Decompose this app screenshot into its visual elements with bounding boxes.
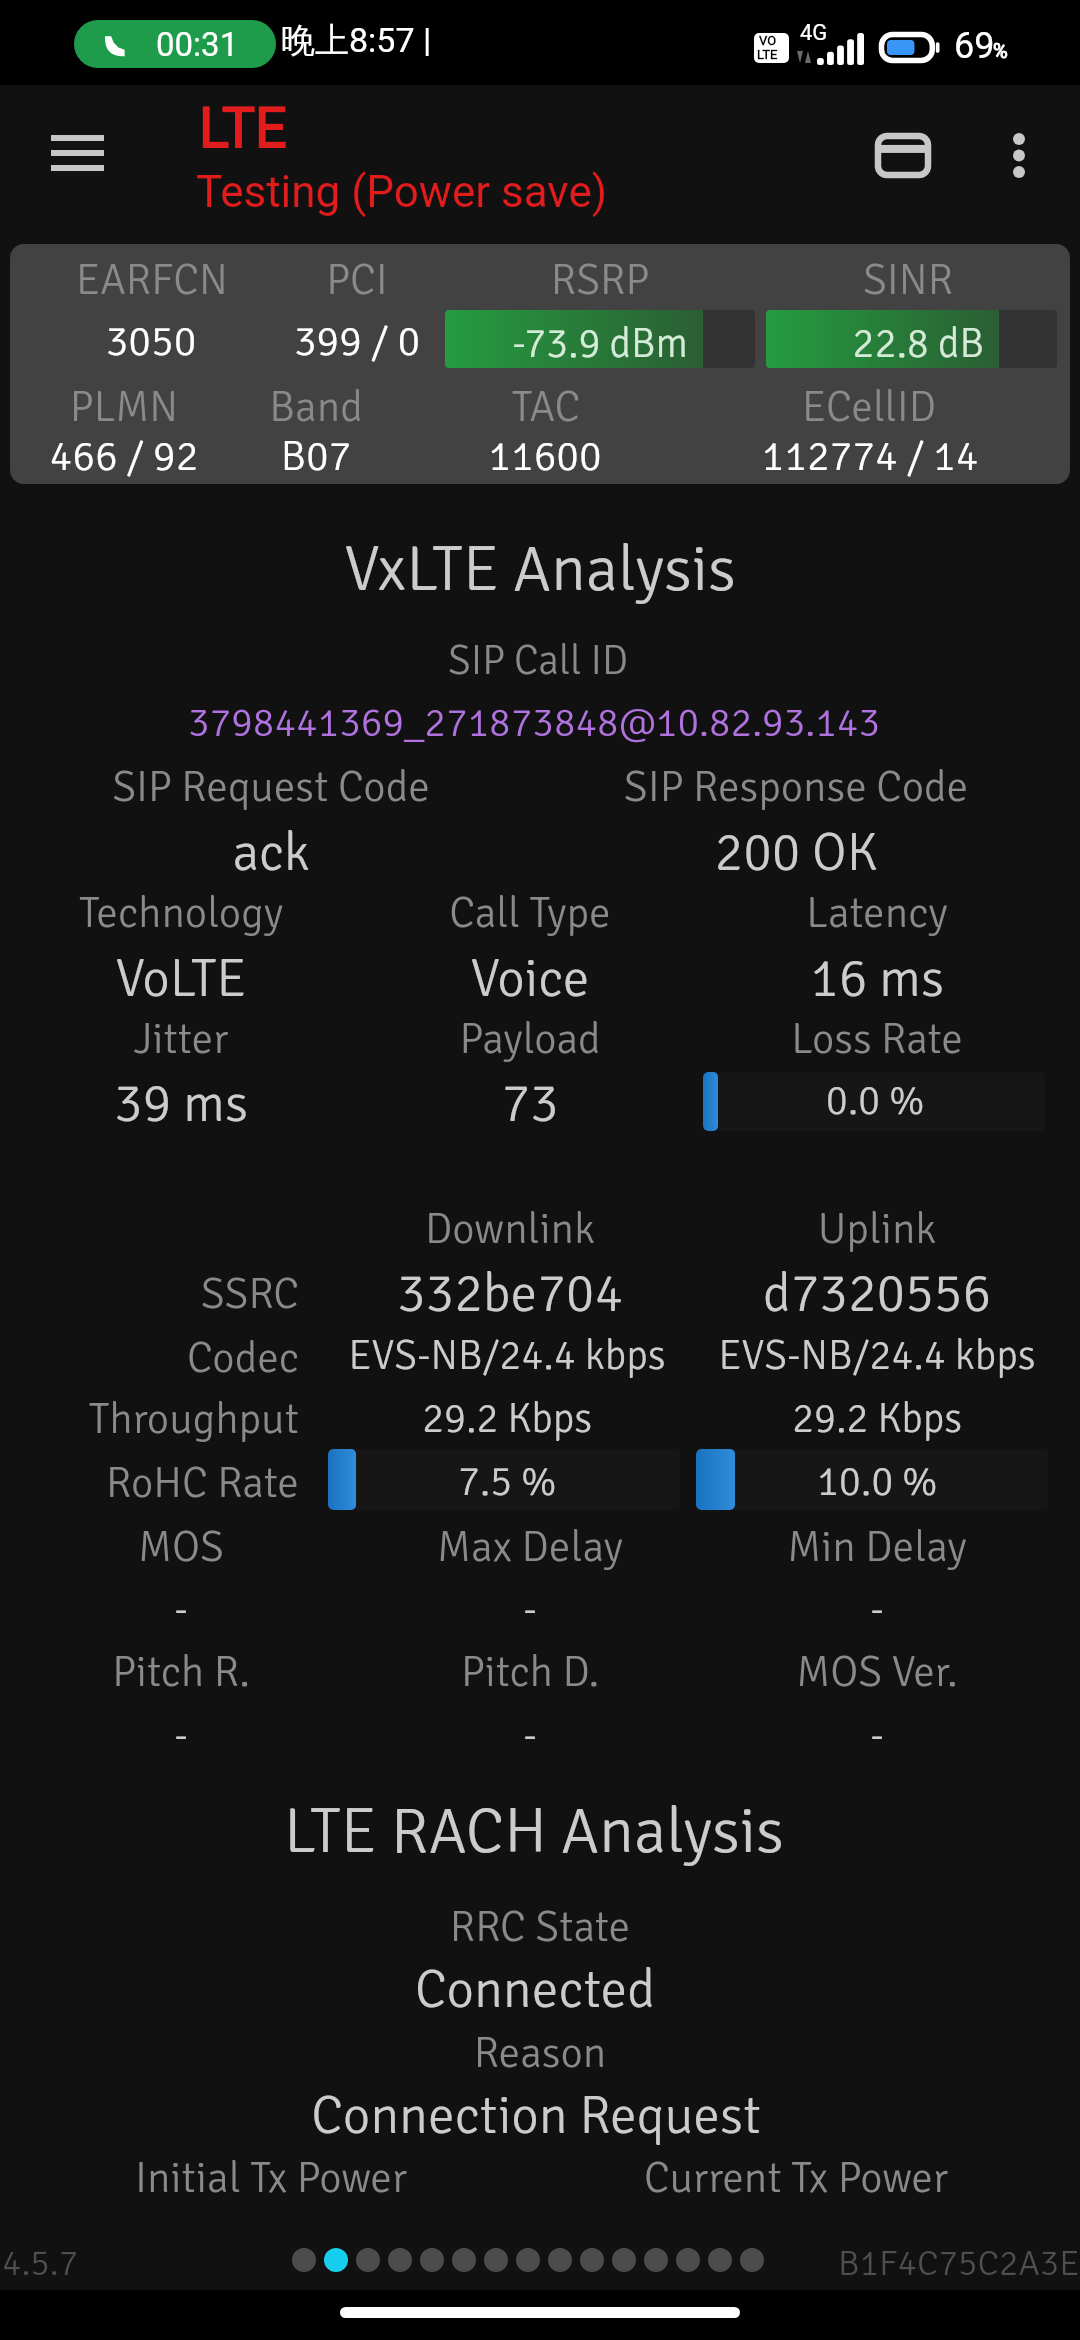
button[interactable]: Page 6 bbox=[452, 2248, 476, 2272]
staticText: B07 bbox=[0, 431, 856, 483]
staticText: 200 OK bbox=[256, 820, 1080, 885]
staticText: VxLTE Analysis bbox=[0, 530, 1080, 609]
staticText: Testing (Power save) bbox=[196, 166, 608, 218]
button[interactable]: Serving cell info bbox=[10, 244, 1070, 484]
staticText: Connected bbox=[0, 1957, 1075, 2022]
staticText: - bbox=[256, 2218, 1080, 2269]
staticText: d7320556 bbox=[337, 1261, 1080, 1326]
staticText: - bbox=[0, 2218, 811, 2269]
staticText: Latency bbox=[337, 887, 1080, 940]
staticText: ack bbox=[0, 820, 811, 885]
button[interactable]: Page 10 bbox=[580, 2248, 604, 2272]
staticText: 7.5 % bbox=[331, 1456, 683, 1507]
button[interactable]: Page 1 bbox=[292, 2248, 316, 2272]
button[interactable]: More options bbox=[973, 109, 1065, 201]
button[interactable]: SIM card info bbox=[857, 109, 949, 201]
staticText: Pitch D. bbox=[0, 1646, 1070, 1699]
staticText: Loss Rate bbox=[337, 1013, 1080, 1066]
staticText: Reason bbox=[0, 2027, 1080, 2080]
staticText: ECellID bbox=[329, 381, 1080, 434]
staticText: Voice bbox=[0, 946, 1070, 1011]
button[interactable]: Page 7 bbox=[484, 2248, 508, 2272]
staticText: Payload bbox=[0, 1013, 1070, 1066]
staticText: 3798441369_271873848@10.82.93.143 bbox=[0, 698, 1074, 747]
staticText: Initial Tx Power bbox=[0, 2152, 811, 2205]
staticText: B1F4C75C2A3E bbox=[838, 2241, 1080, 2285]
button[interactable]: Page 14 bbox=[708, 2248, 732, 2272]
staticText: SIP Response Code bbox=[256, 761, 1080, 814]
staticText: EVS-NB/24.4 kbps bbox=[337, 1330, 1080, 1381]
staticText: RoHC Rate bbox=[0, 1457, 299, 1510]
staticText: 10.0 % bbox=[701, 1456, 1053, 1507]
button[interactable]: Page 9 bbox=[548, 2248, 572, 2272]
staticText: EVS-NB/24.4 kbps bbox=[0, 1330, 1047, 1381]
staticText: 11600 bbox=[5, 431, 1080, 483]
staticText: 3050 bbox=[0, 316, 691, 368]
staticText: 73 bbox=[0, 1071, 1070, 1136]
button[interactable]: Page 8 bbox=[516, 2248, 540, 2272]
button[interactable]: Page 2 bbox=[324, 2248, 348, 2272]
staticText: 29.2 Kbps bbox=[0, 1393, 1047, 1444]
button[interactable]: Open navigation menu bbox=[25, 100, 129, 204]
staticText: 39 ms bbox=[0, 1071, 721, 1136]
staticText: 69 bbox=[954, 25, 995, 67]
staticText: 22.8 dB bbox=[693, 318, 984, 369]
staticText: Codec bbox=[0, 1332, 299, 1385]
staticText: MOS Ver. bbox=[337, 1646, 1080, 1699]
staticText: 399 / 0 bbox=[0, 316, 897, 368]
staticText: 00:31 bbox=[156, 25, 239, 64]
staticText: - bbox=[0, 1584, 721, 1635]
staticText: Min Delay bbox=[337, 1521, 1080, 1574]
button[interactable]: Page 12 bbox=[644, 2248, 668, 2272]
staticText: 466 / 92 bbox=[0, 431, 664, 483]
staticText: - bbox=[337, 1584, 1080, 1635]
staticText: 4G bbox=[800, 20, 828, 46]
staticText: 0.0 % bbox=[704, 1075, 1046, 1126]
staticText: - bbox=[0, 1584, 1070, 1635]
staticText: 29.2 Kbps bbox=[337, 1393, 1080, 1444]
staticText: 112774 / 14 bbox=[330, 431, 1080, 483]
button[interactable]: Page 11 bbox=[612, 2248, 636, 2272]
staticText: - bbox=[0, 1710, 721, 1761]
staticText: SINR bbox=[368, 254, 1080, 307]
staticText: 晚上8:57 | bbox=[281, 19, 432, 62]
staticText: Connection Request bbox=[0, 2083, 1076, 2148]
staticText: Pitch R. bbox=[0, 1646, 721, 1699]
staticText: EARFCN bbox=[0, 254, 692, 307]
button[interactable]: Page 3 bbox=[356, 2248, 380, 2272]
staticText: Uplink bbox=[337, 1203, 1080, 1256]
staticText: SSRC bbox=[0, 1268, 299, 1321]
staticText: Throughput bbox=[0, 1393, 299, 1446]
staticText: - bbox=[337, 1710, 1080, 1761]
staticText: PLMN bbox=[0, 381, 664, 434]
staticText: PCI bbox=[0, 254, 897, 307]
staticText: LTE bbox=[757, 47, 778, 62]
button[interactable]: Page 13 bbox=[676, 2248, 700, 2272]
staticText: Call Type bbox=[0, 887, 1070, 940]
button[interactable]: Page 15 bbox=[740, 2248, 764, 2272]
button[interactable]: Page 4 bbox=[388, 2248, 412, 2272]
staticText: Current Tx Power bbox=[256, 2152, 1080, 2205]
staticText: LTE RACH Analysis bbox=[0, 1792, 1074, 1871]
staticText: RRC State bbox=[0, 1901, 1080, 1954]
staticText: MOS bbox=[0, 1521, 721, 1574]
button[interactable]: Ongoing call 00:31 bbox=[74, 20, 276, 68]
staticText: LTE bbox=[199, 95, 287, 161]
staticText: 4.5.7 bbox=[2, 2241, 79, 2285]
staticText: TAC bbox=[6, 381, 1080, 434]
staticText: SIP Request Code bbox=[0, 761, 811, 814]
staticText: Band bbox=[0, 381, 856, 434]
staticText: SIP Call ID bbox=[0, 635, 1078, 686]
staticText: VO bbox=[759, 33, 777, 48]
staticText: - bbox=[0, 1710, 1070, 1761]
staticText: Max Delay bbox=[0, 1521, 1070, 1574]
staticText: VoLTE bbox=[0, 946, 721, 1011]
staticText: Jitter bbox=[0, 1013, 721, 1066]
staticText: -73.9 dBm bbox=[378, 318, 688, 369]
button[interactable]: Page 5 bbox=[420, 2248, 444, 2272]
staticText: 16 ms bbox=[337, 946, 1080, 1011]
staticText: % bbox=[993, 39, 1008, 62]
staticText: RSRP bbox=[60, 254, 1080, 307]
staticText: Downlink bbox=[0, 1203, 1050, 1256]
staticText: Technology bbox=[0, 887, 721, 940]
